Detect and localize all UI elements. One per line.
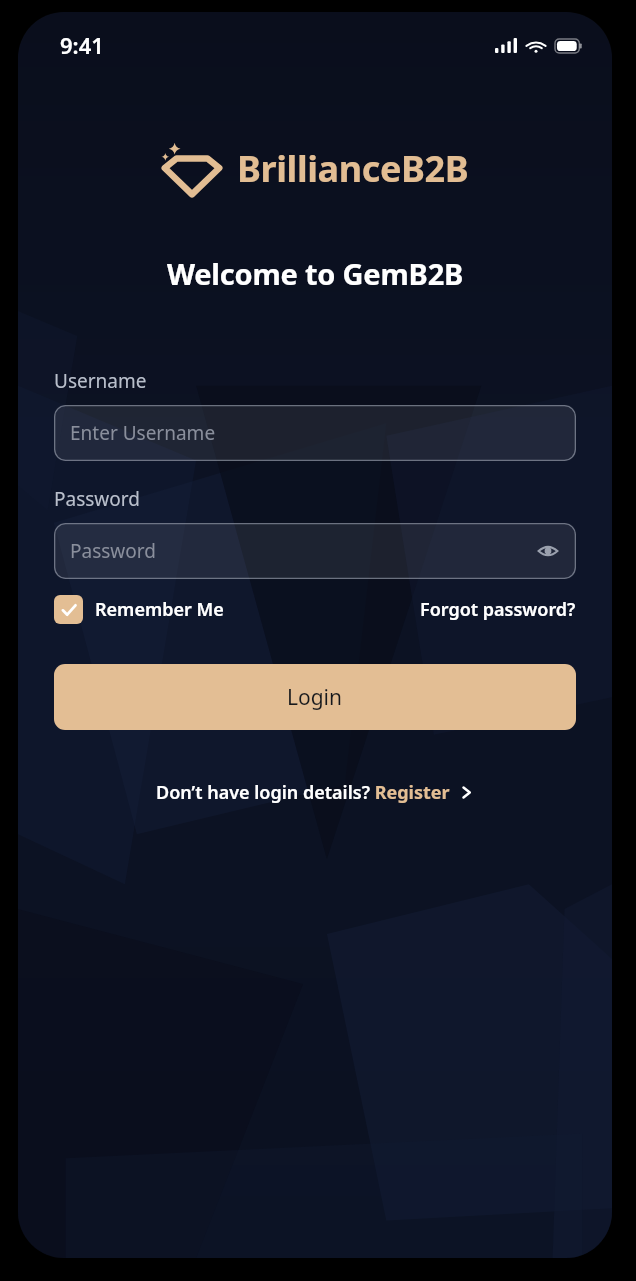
button[interactable]: Password	[54, 523, 576, 579]
button[interactable]: Login	[54, 664, 576, 730]
button[interactable]: Forgot password?	[420, 597, 576, 622]
button[interactable]: Enter Username	[54, 405, 576, 461]
staticText: Welcome to GemB2B	[18, 254, 612, 293]
staticText: 9:41	[60, 30, 104, 60]
staticText: Don’t have login details? Register	[156, 780, 450, 805]
staticText: Password	[70, 538, 156, 564]
staticText: Login	[287, 683, 343, 712]
staticText: Remember Me	[95, 597, 224, 622]
button[interactable]: Remember Me	[54, 595, 224, 624]
staticText: Forgot password?	[420, 597, 576, 622]
button[interactable]: Show password	[534, 537, 562, 565]
staticText: BrillianceB2B	[237, 144, 469, 193]
button[interactable]: Don’t have login details? Register	[54, 780, 576, 805]
other: Register	[459, 785, 474, 800]
staticText: Enter Username	[70, 420, 216, 446]
staticText: Username	[54, 368, 147, 394]
staticText: Password	[54, 486, 140, 512]
other: BrillianceB2B logo	[161, 140, 223, 196]
